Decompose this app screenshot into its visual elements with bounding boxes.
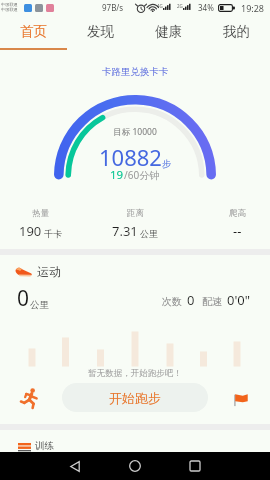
other: Goal xyxy=(231,389,250,408)
staticText: 开始跑步 xyxy=(109,390,161,406)
staticText: /60分钟 xyxy=(124,168,160,182)
staticText: 首页 xyxy=(20,23,47,40)
staticText: 目标 10000 xyxy=(0,126,270,138)
staticText: 爬高 xyxy=(229,208,246,219)
staticText: 7.31 xyxy=(112,222,138,240)
staticText: 中国联通 xyxy=(1,2,18,7)
button[interactable]: Back xyxy=(57,452,92,480)
staticText: 19:28 xyxy=(241,2,265,14)
staticText: 19 xyxy=(110,167,124,183)
button[interactable]: 首页 xyxy=(0,17,67,50)
button[interactable]: Recent apps xyxy=(177,452,212,480)
staticText: 2G xyxy=(177,3,183,9)
staticText: 次数 xyxy=(162,295,182,308)
button[interactable]: Home xyxy=(117,452,152,480)
staticText: 190 xyxy=(19,222,42,240)
staticText: 千卡 xyxy=(44,228,62,239)
staticText: 发现 xyxy=(87,23,114,40)
other: Sport xyxy=(15,265,32,277)
staticText: 运动 xyxy=(37,264,61,279)
staticText: 健康 xyxy=(155,23,182,40)
staticText: 0 xyxy=(187,291,195,309)
staticText: 配速 xyxy=(202,295,222,308)
staticText: 公里 xyxy=(30,299,49,311)
button[interactable]: 我的 xyxy=(202,17,270,50)
staticText: 步 xyxy=(162,158,172,170)
staticText: 训练 xyxy=(35,440,54,452)
button[interactable]: Start running xyxy=(19,387,41,409)
staticText: 中国联通 xyxy=(1,7,18,12)
staticText: 4G xyxy=(157,3,163,9)
staticText: 公里 xyxy=(140,228,158,239)
staticText: -- xyxy=(233,222,242,240)
staticText: 距离 xyxy=(127,208,144,219)
button[interactable]: 开始跑步 xyxy=(62,383,208,412)
staticText: 97B/s xyxy=(102,2,124,13)
staticText: 34% xyxy=(198,2,214,13)
staticText: 我的 xyxy=(223,23,250,40)
other: Start running xyxy=(19,387,41,409)
staticText: 热量 xyxy=(32,208,49,219)
staticText: 0'0" xyxy=(227,291,251,309)
staticText: 10882 xyxy=(99,142,162,172)
button[interactable]: 健康 xyxy=(134,17,202,50)
button[interactable]: 发现 xyxy=(67,17,134,50)
staticText: 卡路里兑换卡卡 xyxy=(0,66,270,78)
staticText: 0 xyxy=(17,284,30,313)
button[interactable]: Goal xyxy=(231,389,250,408)
staticText: 暂无数据，开始跑步吧！ xyxy=(0,368,270,379)
